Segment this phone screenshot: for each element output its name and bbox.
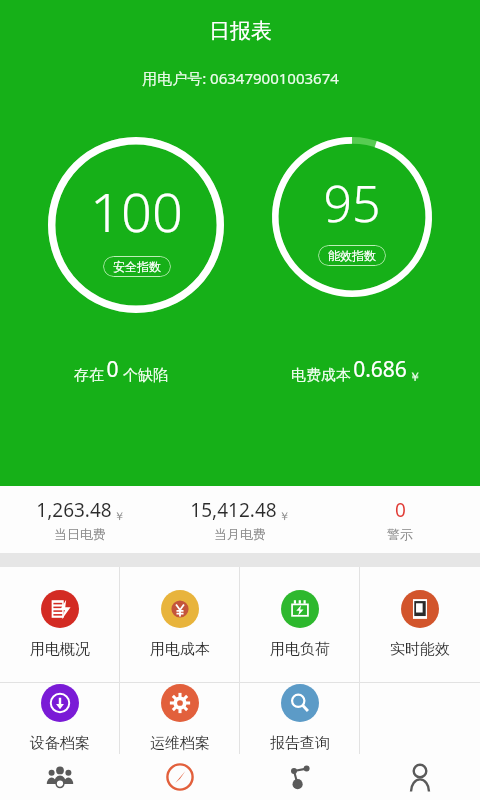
button[interactable]: Customers [0,754,120,800]
button[interactable]: Share [240,754,360,800]
staticText: 0 [395,497,406,523]
button[interactable]: Profile [360,754,480,800]
button[interactable]: Discover [120,754,240,800]
staticText: 0 [106,355,119,384]
staticText: 当日电费 [54,526,106,542]
staticText: 个缺陷 [119,364,168,384]
staticText: 1,263.48 [36,497,112,523]
staticText: 实时能效 [390,640,450,659]
staticText: 0.686 [353,355,407,384]
staticText: 报告查询 [270,734,330,753]
button[interactable]: 用电成本 [120,567,240,682]
button[interactable]: 报告查询 [240,683,360,754]
button[interactable]: 15,412.48 [160,486,320,553]
staticText: ￥ [114,509,125,523]
button[interactable]: 0 [320,486,480,553]
staticText: 95 [323,169,381,237]
button[interactable]: 实时能效 [360,567,480,682]
staticText: 警示 [387,526,413,542]
button[interactable]: 1,263.48 [0,486,160,553]
button[interactable]: 设备档案 [0,683,120,754]
staticText: 15,412.48 [190,497,277,523]
staticText: 存在 [72,364,106,384]
button[interactable]: 运维档案 [120,683,240,754]
staticText: 用电户号: 063479001003674 [142,68,339,88]
staticText: 电费成本 [289,364,353,384]
staticText: 用电成本 [150,640,210,659]
button[interactable]: 用电概况 [0,567,120,682]
staticText: 用电概况 [30,640,90,659]
staticText: 日报表 [209,18,272,44]
staticText: 当月电费 [214,526,266,542]
staticText: ￥ [279,509,290,523]
button[interactable]: 用电负荷 [240,567,360,682]
staticText: 100 [90,174,183,248]
staticText: 安全指数 [113,259,161,274]
staticText: 能效指数 [328,248,376,263]
staticText: ￥ [409,369,421,384]
staticText: 运维档案 [150,734,210,753]
staticText: 设备档案 [30,734,90,753]
staticText: 用电负荷 [270,640,330,659]
